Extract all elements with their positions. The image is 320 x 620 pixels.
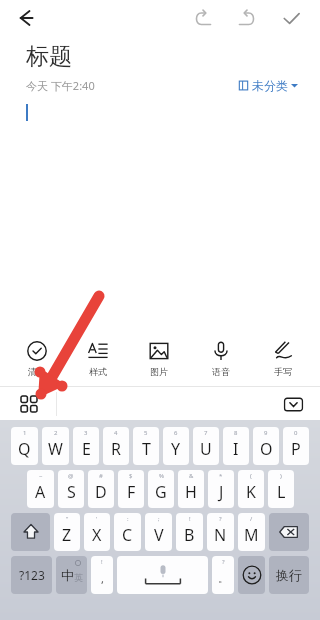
staticText: 0 xyxy=(294,429,298,437)
staticText: ?123 xyxy=(19,567,45,583)
staticText: 样式 xyxy=(89,366,107,377)
staticText: X xyxy=(92,524,102,546)
button[interactable]: 4 xyxy=(103,427,129,465)
button[interactable]: 9 xyxy=(253,427,279,465)
button[interactable]: Switch language xyxy=(56,556,87,594)
button[interactable]: @ xyxy=(58,470,84,508)
button[interactable]: 图片 xyxy=(128,331,190,386)
button[interactable]: ( xyxy=(238,470,264,508)
staticText: ; xyxy=(158,515,160,523)
staticText: 手写 xyxy=(274,366,292,377)
staticText: # xyxy=(99,472,103,480)
staticText: B xyxy=(184,524,195,546)
staticText: N xyxy=(214,524,227,546)
staticText: Z xyxy=(62,524,72,546)
staticText: 标题 xyxy=(26,42,72,71)
staticText: O xyxy=(260,438,273,460)
button[interactable]: 6 xyxy=(163,427,189,465)
button[interactable]: 语音 xyxy=(190,331,252,386)
staticText: H xyxy=(185,481,197,503)
button[interactable]: ! xyxy=(176,513,203,551)
staticText: 5 xyxy=(144,429,148,437)
staticText: $ xyxy=(129,472,133,480)
staticText: W xyxy=(48,438,63,460)
staticText: ? xyxy=(219,515,222,523)
button[interactable]: Space xyxy=(117,556,208,594)
staticText: M xyxy=(244,524,259,546)
button[interactable]: Redo xyxy=(230,1,264,35)
staticText: 中 xyxy=(61,567,74,583)
staticText: 换行 xyxy=(276,567,302,583)
staticText: ' xyxy=(96,515,98,523)
staticText: K xyxy=(246,481,256,503)
button[interactable]: 换行 xyxy=(269,556,309,594)
staticText: 8 xyxy=(234,429,238,437)
button[interactable]: ?123 xyxy=(11,556,52,594)
staticText: 。 xyxy=(218,572,228,585)
staticText: 7 xyxy=(204,429,208,437)
button[interactable]: ! xyxy=(91,556,113,594)
button[interactable]: 未分类 xyxy=(238,78,304,93)
button[interactable]: 8 xyxy=(223,427,249,465)
staticText: % xyxy=(159,472,164,480)
button[interactable]: 0 xyxy=(283,427,309,465)
button[interactable]: 7 xyxy=(193,427,219,465)
staticText: & xyxy=(189,472,194,480)
button[interactable]: ; xyxy=(145,513,172,551)
staticText: R xyxy=(111,438,121,460)
button[interactable]: 手写 xyxy=(252,331,314,386)
button[interactable]: 5 xyxy=(133,427,159,465)
staticText: * xyxy=(219,472,223,480)
button[interactable]: Key xyxy=(269,513,309,551)
button[interactable]: Key xyxy=(11,513,50,551)
staticText: ( xyxy=(250,472,252,480)
button[interactable]: & xyxy=(178,470,204,508)
staticText: D xyxy=(95,481,107,503)
staticText: 清单 xyxy=(28,366,46,377)
button[interactable]: * xyxy=(208,470,234,508)
button[interactable]: # xyxy=(88,470,114,508)
button[interactable]: Undo xyxy=(186,1,220,35)
staticText: 3 xyxy=(84,429,88,437)
staticText: ) xyxy=(280,472,282,480)
button[interactable]: ~ xyxy=(27,470,54,508)
staticText: ! xyxy=(101,558,103,566)
staticText: V xyxy=(154,524,164,546)
button[interactable]: $ xyxy=(118,470,144,508)
staticText: L xyxy=(277,481,286,503)
button[interactable]: 3 xyxy=(73,427,99,465)
button[interactable]: 清单 xyxy=(6,331,67,386)
button[interactable]: ? xyxy=(212,556,234,594)
button[interactable]: 样式 xyxy=(67,331,128,386)
staticText: ? xyxy=(222,558,225,566)
staticText: 9 xyxy=(264,429,268,437)
button[interactable]: Back xyxy=(8,0,44,36)
staticText: 2 xyxy=(54,429,58,437)
button[interactable]: / xyxy=(238,513,265,551)
button[interactable]: % xyxy=(148,470,174,508)
button[interactable]: " xyxy=(54,513,80,551)
staticText: ~ xyxy=(39,472,43,480)
button[interactable]: ' xyxy=(84,513,110,551)
staticText: 英 xyxy=(74,572,83,583)
button[interactable]: Done xyxy=(274,1,308,35)
staticText: P xyxy=(291,438,301,460)
staticText: T xyxy=(142,438,151,460)
staticText: E xyxy=(82,438,91,460)
button[interactable]: Hide keyboard xyxy=(278,389,308,419)
staticText: U xyxy=(200,438,212,460)
staticText: C xyxy=(122,524,133,546)
button[interactable]: ) xyxy=(268,470,294,508)
button[interactable]: Key xyxy=(238,556,265,594)
button[interactable]: : xyxy=(114,513,141,551)
button[interactable]: More tools xyxy=(14,389,44,419)
staticText: I xyxy=(233,438,239,460)
button[interactable]: 1 xyxy=(11,427,38,465)
staticText: / xyxy=(250,515,253,523)
staticText: Q xyxy=(18,438,31,460)
staticText: " xyxy=(66,515,69,523)
button[interactable]: 2 xyxy=(42,427,69,465)
staticText: 图片 xyxy=(150,366,168,377)
staticText: 语音 xyxy=(212,366,230,377)
button[interactable]: ? xyxy=(207,513,234,551)
